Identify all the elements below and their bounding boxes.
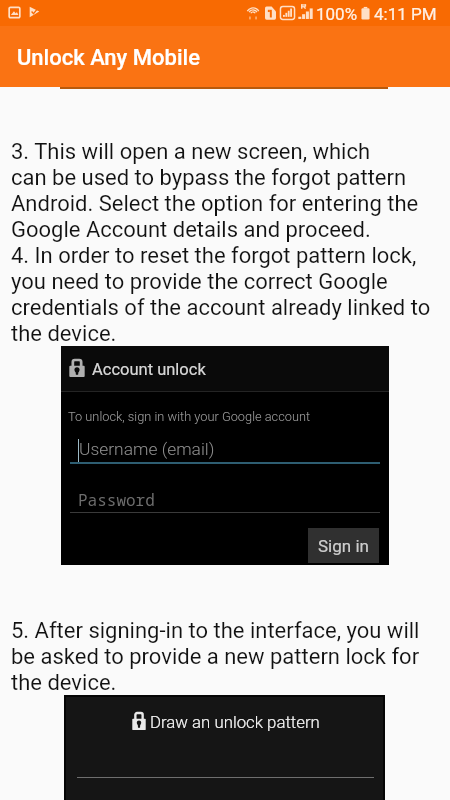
staticText: Sign in <box>318 536 369 556</box>
staticText: 100% <box>316 4 358 24</box>
staticText: Draw an unlock pattern <box>150 712 320 732</box>
staticText: Password <box>78 489 155 511</box>
staticText: Account unlock <box>92 360 206 379</box>
staticText: 5. After signing-in to the interface, yo… <box>11 618 420 696</box>
button[interactable]: Sign in <box>308 528 379 563</box>
other: Screenshot <box>8 6 21 19</box>
staticText: Username (email) <box>79 439 215 459</box>
staticText: 4:11 PM <box>374 4 437 24</box>
staticText: 3. This will open a new screen, which ca… <box>11 139 431 347</box>
other: Play Store update <box>28 6 40 18</box>
staticText: Unlock Any Mobile <box>17 45 201 71</box>
staticText: To unlock, sign in with your Google acco… <box>68 409 311 424</box>
button[interactable]: Unlock Any Mobile <box>0 26 450 87</box>
